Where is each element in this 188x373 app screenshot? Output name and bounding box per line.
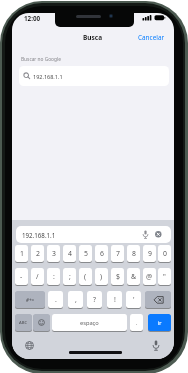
staticText: ; — [69, 272, 71, 281]
staticText: 3 — [52, 249, 56, 258]
staticText: 9 — [148, 249, 152, 258]
button[interactable]: #+= — [15, 291, 45, 308]
staticText: 192.168.1.1 — [22, 231, 56, 239]
button[interactable]: 5 — [79, 245, 92, 262]
staticText: 4 — [68, 249, 72, 258]
staticText: espaço — [80, 319, 99, 327]
staticText: ' — [133, 295, 135, 304]
staticText: ABC — [19, 320, 28, 326]
button[interactable]: 4 — [63, 245, 76, 262]
staticText: Busca — [83, 33, 103, 42]
button[interactable]: - — [15, 268, 28, 285]
button[interactable] — [155, 231, 162, 238]
button[interactable]: , — [68, 291, 83, 308]
staticText: ( — [84, 272, 87, 281]
button[interactable]: ? — [87, 291, 102, 308]
button[interactable]: 1 — [15, 245, 28, 262]
staticText: ? — [93, 295, 96, 304]
button[interactable]: ir — [148, 314, 171, 331]
button[interactable]: / — [31, 268, 44, 285]
button[interactable] — [33, 314, 50, 331]
staticText: 192.168.1.1 — [33, 73, 63, 80]
staticText: 1 — [20, 249, 24, 258]
button[interactable]: . — [130, 314, 143, 331]
staticText: " — [163, 272, 166, 281]
button[interactable]: ( — [79, 268, 92, 285]
button[interactable]: 0 — [158, 245, 171, 262]
staticText: #+= — [26, 297, 35, 303]
staticText: $ — [116, 272, 120, 281]
button[interactable]: ; — [63, 268, 76, 285]
button[interactable]: 8 — [127, 245, 140, 262]
button[interactable]: 192.168.1.1 — [16, 226, 171, 243]
staticText: 2 — [36, 249, 40, 258]
staticText: , — [75, 295, 77, 304]
button[interactable] — [152, 340, 160, 351]
button[interactable]: & — [127, 268, 140, 285]
staticText: . — [55, 295, 57, 304]
button[interactable]: . — [48, 291, 63, 308]
staticText: - — [20, 272, 23, 281]
button[interactable]: espaço — [52, 314, 127, 331]
staticText: 0 — [163, 249, 167, 258]
staticText: 12:00 — [24, 14, 41, 23]
button[interactable] — [142, 230, 149, 239]
staticText: 7 — [116, 249, 120, 258]
staticText: ! — [114, 295, 116, 304]
staticText: ) — [100, 272, 103, 281]
button[interactable]: 7 — [111, 245, 124, 262]
button[interactable]: $ — [111, 268, 124, 285]
button[interactable]: Cancelar — [138, 33, 165, 42]
button[interactable]: 192.168.1.1 — [19, 66, 169, 86]
button[interactable]: ) — [95, 268, 108, 285]
button[interactable] — [145, 291, 171, 308]
staticText: ir — [158, 319, 162, 326]
staticText: @ — [146, 272, 153, 281]
staticText: Cancelar — [138, 33, 165, 42]
button[interactable]: ! — [107, 291, 122, 308]
button[interactable]: 3 — [47, 245, 60, 262]
button[interactable]: ' — [126, 291, 141, 308]
button[interactable]: " — [158, 268, 171, 285]
staticText: . — [136, 319, 138, 326]
button[interactable] — [25, 341, 34, 350]
button[interactable]: : — [47, 268, 60, 285]
staticText: / — [36, 272, 39, 281]
button[interactable]: 6 — [95, 245, 108, 262]
button[interactable]: 9 — [143, 245, 156, 262]
button[interactable]: ABC — [15, 314, 32, 331]
button[interactable]: 2 — [31, 245, 44, 262]
staticText: 8 — [132, 249, 136, 258]
staticText: 6 — [100, 249, 104, 258]
staticText: & — [131, 272, 137, 281]
staticText: 5 — [84, 249, 88, 258]
staticText: : — [53, 272, 55, 281]
button[interactable]: @ — [143, 268, 156, 285]
staticText: Buscar no Google — [21, 56, 61, 63]
